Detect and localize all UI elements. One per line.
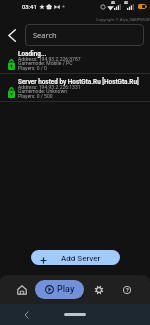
- staticText: Gamemode: Mobile / PC: [18, 60, 73, 66]
- button[interactable]: Back: [3, 27, 21, 44]
- button[interactable]: Play: [35, 280, 84, 299]
- staticText: ?: [126, 287, 129, 294]
- button[interactable]: Help: [117, 279, 137, 300]
- button[interactable]: Loading...: [0, 46, 150, 74]
- staticText: Players: 0 / 0: [18, 65, 47, 71]
- button[interactable]: Add Server: [31, 250, 120, 265]
- button[interactable]: Home: [12, 279, 32, 300]
- staticText: Add Server: [61, 254, 101, 263]
- staticText: Loading...: [18, 50, 47, 58]
- staticText: Gamemode: Unknown: [18, 88, 67, 94]
- staticText: 03:41: [22, 4, 37, 11]
- staticText: Play: [57, 284, 75, 295]
- button[interactable]: Search: [25, 24, 144, 46]
- staticText: Copyright © Alya_SAMPMOBILE: [96, 17, 150, 22]
- staticText: 4G: [124, 1, 129, 5]
- staticText: Search: [33, 30, 57, 40]
- staticText: 4G: [111, 1, 116, 5]
- button[interactable]: Server hosted by HostGta.Ru [HostGta.Ru]: [0, 74, 150, 102]
- button[interactable]: Settings: [89, 279, 109, 300]
- staticText: Address: 194.93.2.226:1331: [18, 84, 81, 90]
- staticText: Players: 0 / 500: [18, 93, 53, 99]
- staticText: Server hosted by HostGta.Ru [HostGta.Ru]: [18, 78, 139, 86]
- staticText: Address: 194.93.2.226:3787: [18, 56, 81, 62]
